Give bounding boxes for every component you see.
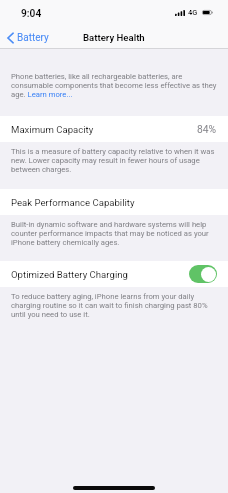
staticText: Built-in dynamic software and hardware s… (11, 220, 217, 247)
staticText: To reduce battery aging, iPhone learns f… (11, 292, 217, 319)
staticText: This is a measure of battery capacity re… (11, 147, 217, 174)
button[interactable]: Battery (0, 29, 55, 47)
staticText: Battery Health (83, 32, 145, 43)
staticText: Optimized Battery Charging (11, 269, 128, 280)
staticText: Peak Performance Capability (11, 197, 135, 208)
button[interactable]: Optimized Battery Charging toggle (189, 265, 217, 283)
staticText: Maximum Capacity (11, 124, 94, 135)
staticText: 4G (188, 8, 198, 17)
staticText: Battery (17, 32, 49, 44)
staticText: Phone batteries, like all rechargeable b… (11, 72, 217, 99)
staticText: 9:04 (21, 8, 42, 20)
staticText: 84% (197, 123, 217, 135)
